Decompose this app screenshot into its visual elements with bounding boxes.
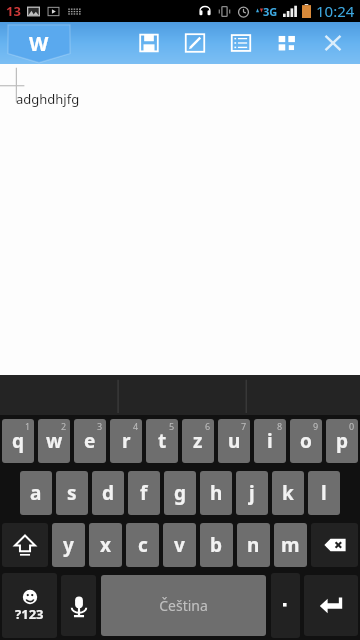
staticText: ?123 — [15, 605, 44, 623]
staticText: i — [267, 428, 273, 454]
staticText: 5 — [169, 420, 175, 432]
staticText: Čeština — [159, 596, 208, 615]
button[interactable]: c — [126, 523, 159, 567]
staticText: a — [30, 480, 42, 506]
button[interactable]: Period — [271, 573, 300, 638]
button[interactable]: f — [128, 471, 160, 515]
button[interactable]: a — [20, 471, 52, 515]
button[interactable]: Shift — [2, 523, 48, 567]
button[interactable]: Apps — [270, 26, 304, 60]
button[interactable]: b — [200, 523, 233, 567]
staticText: p — [336, 428, 349, 454]
button[interactable]: u — [218, 419, 250, 463]
button[interactable]: Backspace — [311, 523, 358, 567]
button[interactable]: d — [92, 471, 124, 515]
button[interactable]: h — [200, 471, 232, 515]
staticText: g — [174, 480, 187, 506]
button[interactable]: p — [326, 419, 358, 463]
staticText: adghdhjfg — [16, 90, 80, 108]
button[interactable]: r — [110, 419, 142, 463]
button[interactable]: Enter — [304, 575, 358, 636]
button[interactable]: x — [89, 523, 122, 567]
staticText: x — [100, 532, 111, 558]
staticText: q — [12, 428, 25, 454]
button[interactable]: v — [163, 523, 196, 567]
staticText: d — [102, 480, 115, 506]
staticText: 6 — [205, 420, 211, 432]
staticText: r — [122, 428, 131, 454]
staticText: 4 — [133, 420, 139, 432]
button[interactable]: Space — [101, 575, 266, 636]
button[interactable]: w — [38, 419, 70, 463]
staticText: l — [321, 480, 327, 506]
button[interactable]: s — [56, 471, 88, 515]
staticText: c — [138, 532, 148, 558]
staticText: 8 — [277, 420, 283, 432]
staticText: u — [228, 428, 241, 454]
button[interactable]: Symbols — [2, 573, 57, 638]
button[interactable]: n — [237, 523, 270, 567]
button[interactable]: g — [164, 471, 196, 515]
staticText: z — [193, 428, 203, 454]
staticText: 2 — [61, 420, 67, 432]
button[interactable]: Close — [316, 26, 350, 60]
staticText: m — [281, 532, 300, 558]
button[interactable]: m — [274, 523, 307, 567]
staticText: k — [282, 480, 294, 506]
button[interactable]: i — [254, 419, 286, 463]
button[interactable]: Save — [132, 26, 166, 60]
staticText: b — [210, 532, 223, 558]
staticText: 9 — [313, 420, 319, 432]
staticText: j — [249, 480, 255, 506]
button[interactable]: z — [182, 419, 214, 463]
button[interactable]: t — [146, 419, 178, 463]
staticText: W — [29, 30, 49, 57]
button[interactable]: List — [224, 26, 258, 60]
button[interactable]: e — [74, 419, 106, 463]
staticText: f — [140, 480, 148, 506]
button[interactable]: l — [308, 471, 340, 515]
staticText: 3 — [97, 420, 103, 432]
button[interactable]: Voice input — [61, 575, 96, 636]
staticText: s — [67, 480, 77, 506]
staticText: t — [158, 428, 167, 454]
staticText: 7 — [241, 420, 247, 432]
button[interactable]: k — [272, 471, 304, 515]
staticText: e — [84, 428, 96, 454]
staticText: y — [63, 532, 74, 558]
button[interactable]: q — [2, 419, 34, 463]
staticText: w — [46, 428, 63, 454]
staticText: n — [247, 532, 260, 558]
staticText: 13 — [6, 2, 21, 20]
button[interactable]: App menu — [8, 22, 70, 64]
staticText: 10:24 — [316, 1, 355, 21]
staticText: 1 — [25, 420, 31, 432]
staticText: o — [300, 428, 312, 454]
button[interactable]: y — [52, 523, 85, 567]
button[interactable]: j — [236, 471, 268, 515]
staticText: v — [174, 532, 185, 558]
staticText: h — [210, 480, 223, 506]
staticText: 0 — [349, 420, 355, 432]
button[interactable]: Edit — [178, 26, 212, 60]
staticText: 3G — [263, 4, 278, 19]
button[interactable]: o — [290, 419, 322, 463]
